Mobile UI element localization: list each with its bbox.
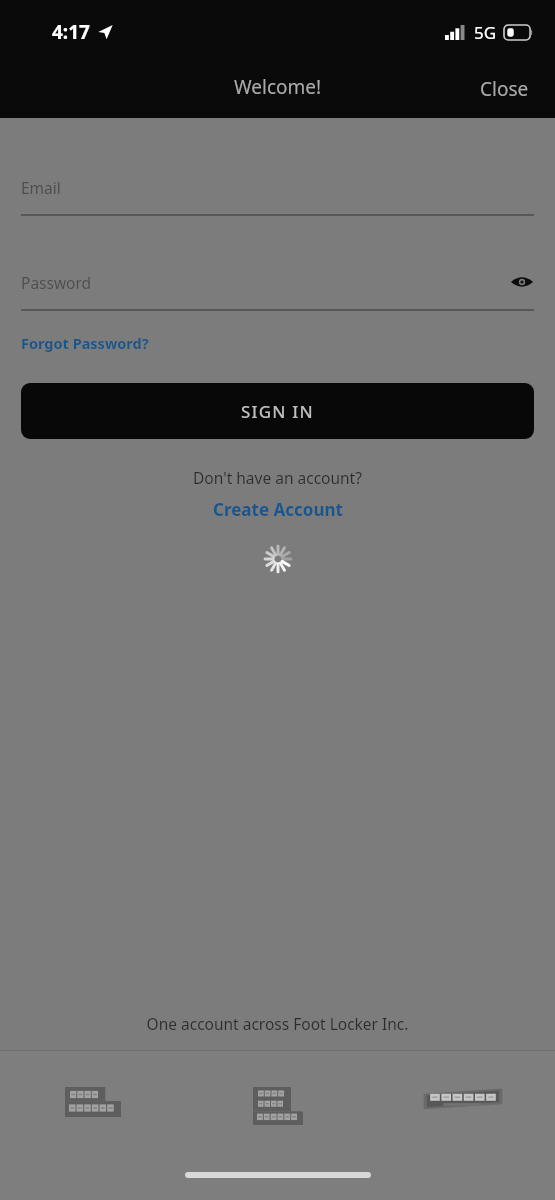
button[interactable]: Champs Sports (422, 1087, 504, 1113)
staticText: Email (21, 177, 61, 198)
button[interactable]: Forgot Password? (21, 331, 149, 355)
staticText: Forgot Password? (21, 333, 149, 353)
staticText: Welcome! (234, 74, 322, 100)
button[interactable]: Create Account (207, 496, 349, 523)
button[interactable]: Close (454, 70, 555, 108)
staticText: One account across Foot Locker Inc. (0, 1013, 555, 1034)
staticText: Close (480, 76, 529, 102)
button[interactable]: Email (0, 173, 555, 216)
staticText: SIGN IN (241, 400, 314, 423)
button[interactable]: Foot Locker (65, 1087, 121, 1117)
button[interactable]: Show password (510, 274, 534, 290)
button[interactable]: Password (0, 268, 555, 311)
staticText: 5G (474, 21, 497, 44)
staticText: Create Account (213, 498, 343, 521)
other: Loading (264, 545, 292, 573)
staticText: Don't have an account? (0, 467, 555, 488)
staticText: 4:17 (52, 19, 90, 45)
button[interactable]: SIGN IN (21, 383, 534, 439)
staticText: Password (21, 272, 92, 293)
button[interactable]: Kids Foot Locker (253, 1087, 303, 1125)
